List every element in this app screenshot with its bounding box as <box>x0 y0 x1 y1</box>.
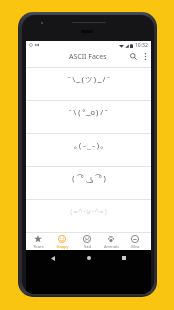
staticText: ASCII Faces <box>69 52 107 62</box>
button[interactable]: Misc <box>123 233 147 250</box>
button[interactable]: Recents <box>116 250 132 266</box>
staticText: ｡(-‿-)｡ <box>74 140 104 150</box>
staticText: Yours <box>33 244 44 249</box>
staticText: ( ͡° ͜ʖ ͡°) <box>71 173 107 183</box>
staticText: Sad <box>84 244 91 249</box>
staticText: Misc <box>131 244 140 249</box>
button[interactable]: Back <box>45 250 61 266</box>
button[interactable]: ¯\_(ツ)_/¯ <box>26 68 151 101</box>
button[interactable]: Home <box>81 250 97 266</box>
button[interactable]: (=^･ω･^=) <box>26 200 151 233</box>
button[interactable]: Animals <box>99 233 123 250</box>
staticText: Happy <box>56 244 69 249</box>
button[interactable]: ( ͡° ͜ʖ ͡°) <box>26 167 151 200</box>
button[interactable]: Search <box>126 47 140 66</box>
staticText: (=^･ω･^=) <box>69 206 108 216</box>
staticText: 10:32 <box>135 42 148 49</box>
staticText: ¯\(°_o)/¯ <box>68 107 109 117</box>
staticText: Animals <box>104 244 119 249</box>
button[interactable]: Yours <box>26 233 50 250</box>
staticText: ¯\_(ツ)_/¯ <box>67 74 111 84</box>
button[interactable]: More options <box>140 47 151 66</box>
button[interactable]: ｡(-‿-)｡ <box>26 134 151 167</box>
button[interactable]: ¯\(°_o)/¯ <box>26 101 151 134</box>
button[interactable]: Sad <box>75 233 99 250</box>
button[interactable]: Happy <box>50 233 74 250</box>
